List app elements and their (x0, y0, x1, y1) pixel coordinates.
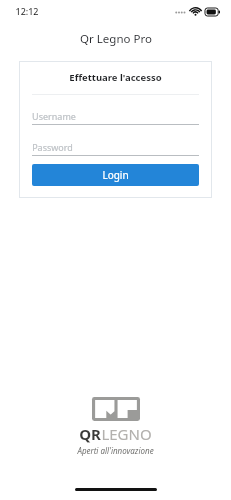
staticText: QR (79, 424, 101, 444)
button[interactable]: Password (32, 138, 199, 156)
button[interactable]: Login (32, 164, 199, 186)
staticText: Effettuare l'accesso (69, 71, 162, 84)
button[interactable]: Username (32, 107, 199, 125)
staticText: Qr Legno Pro (80, 31, 152, 47)
staticText: Username (32, 110, 76, 122)
staticText: Password (32, 141, 73, 153)
staticText: LEGNO (101, 424, 152, 444)
staticText: 12:12 (15, 5, 39, 17)
staticText: Login (102, 168, 129, 182)
staticText: Aperti all'innovazione (77, 445, 154, 456)
